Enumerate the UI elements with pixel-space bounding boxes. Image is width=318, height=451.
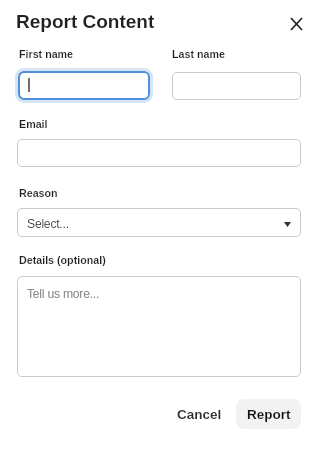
staticText: Select... [27,217,69,231]
staticText: Report [247,407,291,422]
button[interactable]: Select... [17,208,301,237]
staticText: Tell us more... [27,287,100,301]
button[interactable] [172,72,301,100]
staticText: Details (optional) [19,254,106,266]
button[interactable]: Tell us more... [17,276,301,377]
button[interactable] [282,10,310,38]
staticText: Reason [19,187,58,199]
button[interactable]: Cancel [170,399,228,429]
button[interactable] [18,71,150,100]
staticText: First name [19,48,74,60]
staticText: Cancel [177,407,222,422]
staticText: Email [19,118,48,130]
button[interactable]: Report [236,399,301,429]
button[interactable] [17,139,301,167]
staticText: Last name [172,48,225,60]
staticText: Report Content [16,11,155,32]
